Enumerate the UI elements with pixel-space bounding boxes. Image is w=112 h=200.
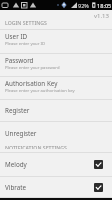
- button[interactable]: Password: [0, 54, 112, 77]
- staticText: v1.13: [94, 12, 109, 19]
- staticText: Please enter your password: [5, 65, 60, 71]
- staticText: Register: [5, 106, 30, 115]
- button[interactable]: Vibrate: [0, 177, 112, 198]
- staticText: Melody: [5, 160, 27, 169]
- button[interactable]: User ID: [0, 30, 112, 54]
- staticText: 92%: [78, 2, 89, 9]
- button[interactable]: Melody: [0, 153, 112, 177]
- staticText: NOTIFICATION SETTINGS: [5, 144, 67, 149]
- button[interactable]: Authorisation Key: [0, 77, 112, 100]
- staticText: Authorisation Key: [5, 79, 58, 88]
- staticText: Vibrate: [5, 183, 27, 192]
- staticText: Password: [5, 56, 34, 65]
- staticText: User ID: [5, 32, 28, 41]
- staticText: 18:05: [97, 2, 112, 10]
- staticText: Please enter your ID: [5, 41, 45, 47]
- staticText: LOGIN SETTINGS: [5, 19, 47, 26]
- button[interactable]: Unregister: [0, 122, 112, 144]
- button[interactable]: Register: [0, 100, 112, 122]
- staticText: Please enter your authorisation key: [5, 88, 75, 94]
- staticText: Unregister: [5, 129, 37, 138]
